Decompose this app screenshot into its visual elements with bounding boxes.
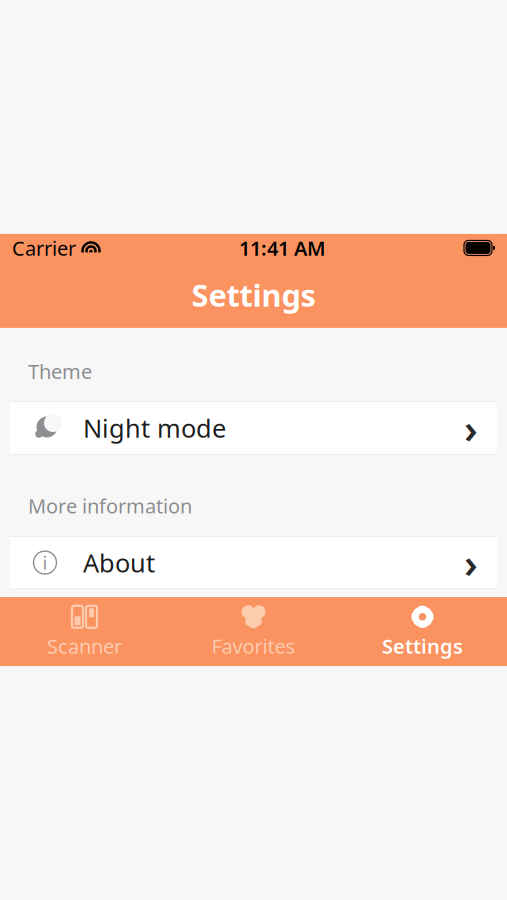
staticText: Carrier [12,235,76,261]
staticText: › [464,401,478,454]
button[interactable]: Scanner [0,597,169,666]
staticText: More information [28,492,192,519]
button[interactable]: Favorites [169,597,338,666]
staticText: › [464,536,478,589]
staticText: Theme [28,358,92,384]
staticText: Favorites [211,633,295,659]
staticText: Night mode [83,411,226,445]
button[interactable]: Settings [338,597,507,666]
staticText: Settings [191,275,315,315]
button[interactable]: Night mode [10,401,497,454]
staticText: About [83,546,155,579]
staticText: Scanner [47,633,122,659]
staticText: Settings [382,633,463,659]
button[interactable]: i [10,536,497,589]
staticText: i [42,550,47,575]
staticText: 11:41 AM [239,235,326,261]
